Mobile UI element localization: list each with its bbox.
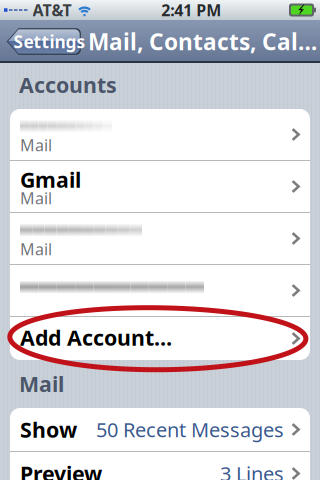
staticText: Gmail <box>20 165 81 194</box>
staticText: Mail <box>20 134 52 156</box>
button[interactable]: Gmail <box>10 161 310 212</box>
staticText: Mail, Contacts, Calend… <box>88 26 320 56</box>
button[interactable]: Add Account… <box>10 317 310 360</box>
staticText: AT&T <box>32 0 71 21</box>
staticText: Add Account… <box>20 323 172 352</box>
staticText: 2:41 PM <box>161 0 221 21</box>
staticText: Preview <box>20 459 102 480</box>
button[interactable]: Mail <box>10 109 310 160</box>
staticText: Mail <box>19 370 64 398</box>
button[interactable]: Mail <box>10 213 310 264</box>
staticText: Show <box>20 415 77 444</box>
staticText: Mail <box>20 238 52 260</box>
button[interactable]: Show <box>10 408 310 451</box>
button[interactable]: Preview <box>10 452 310 480</box>
staticText: Accounts <box>19 71 117 99</box>
button[interactable] <box>10 265 310 316</box>
staticText: Mail <box>20 187 52 209</box>
staticText: 50 Recent Messages <box>96 416 284 443</box>
button[interactable]: Settings <box>5 27 82 56</box>
staticText: 3 Lines <box>220 460 284 480</box>
staticText: Settings <box>13 30 85 53</box>
